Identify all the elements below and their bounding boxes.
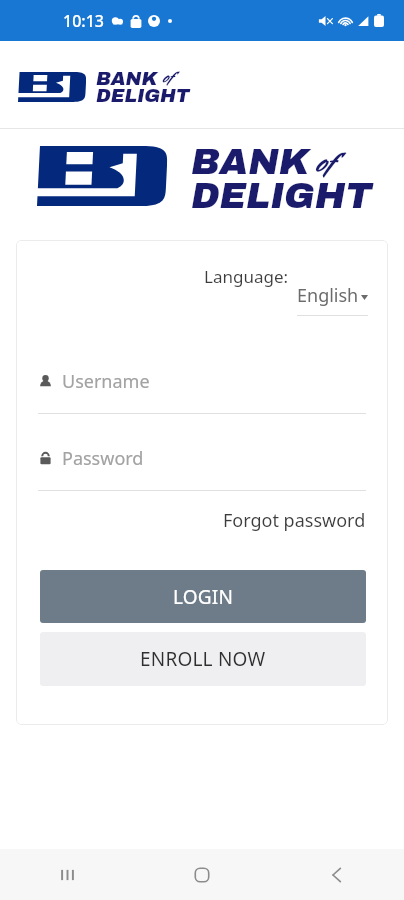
staticText: BANK [96, 68, 158, 89]
button[interactable]: Back [269, 849, 404, 900]
staticText: ENROLL NOW [140, 646, 266, 672]
staticText: of [161, 68, 171, 87]
staticText: BANK [191, 142, 309, 181]
staticText: Password [62, 446, 144, 471]
staticText: 10:13 [63, 10, 104, 32]
button[interactable]: Recent apps [0, 849, 134, 900]
staticText: Language: [204, 265, 289, 288]
staticText: of [313, 146, 331, 179]
staticText: DELIGHT [96, 85, 190, 106]
staticText: English [297, 283, 359, 308]
button[interactable]: Forgot password [223, 508, 366, 533]
staticText: DELIGHT [191, 176, 373, 215]
button[interactable]: ENROLL NOW [40, 632, 366, 686]
staticText: Username [62, 369, 150, 394]
button[interactable]: English [297, 283, 368, 316]
button[interactable]: Home [134, 849, 269, 900]
staticText: Forgot password [223, 508, 366, 533]
staticText: LOGIN [173, 584, 234, 610]
button[interactable]: LOGIN [40, 570, 366, 623]
